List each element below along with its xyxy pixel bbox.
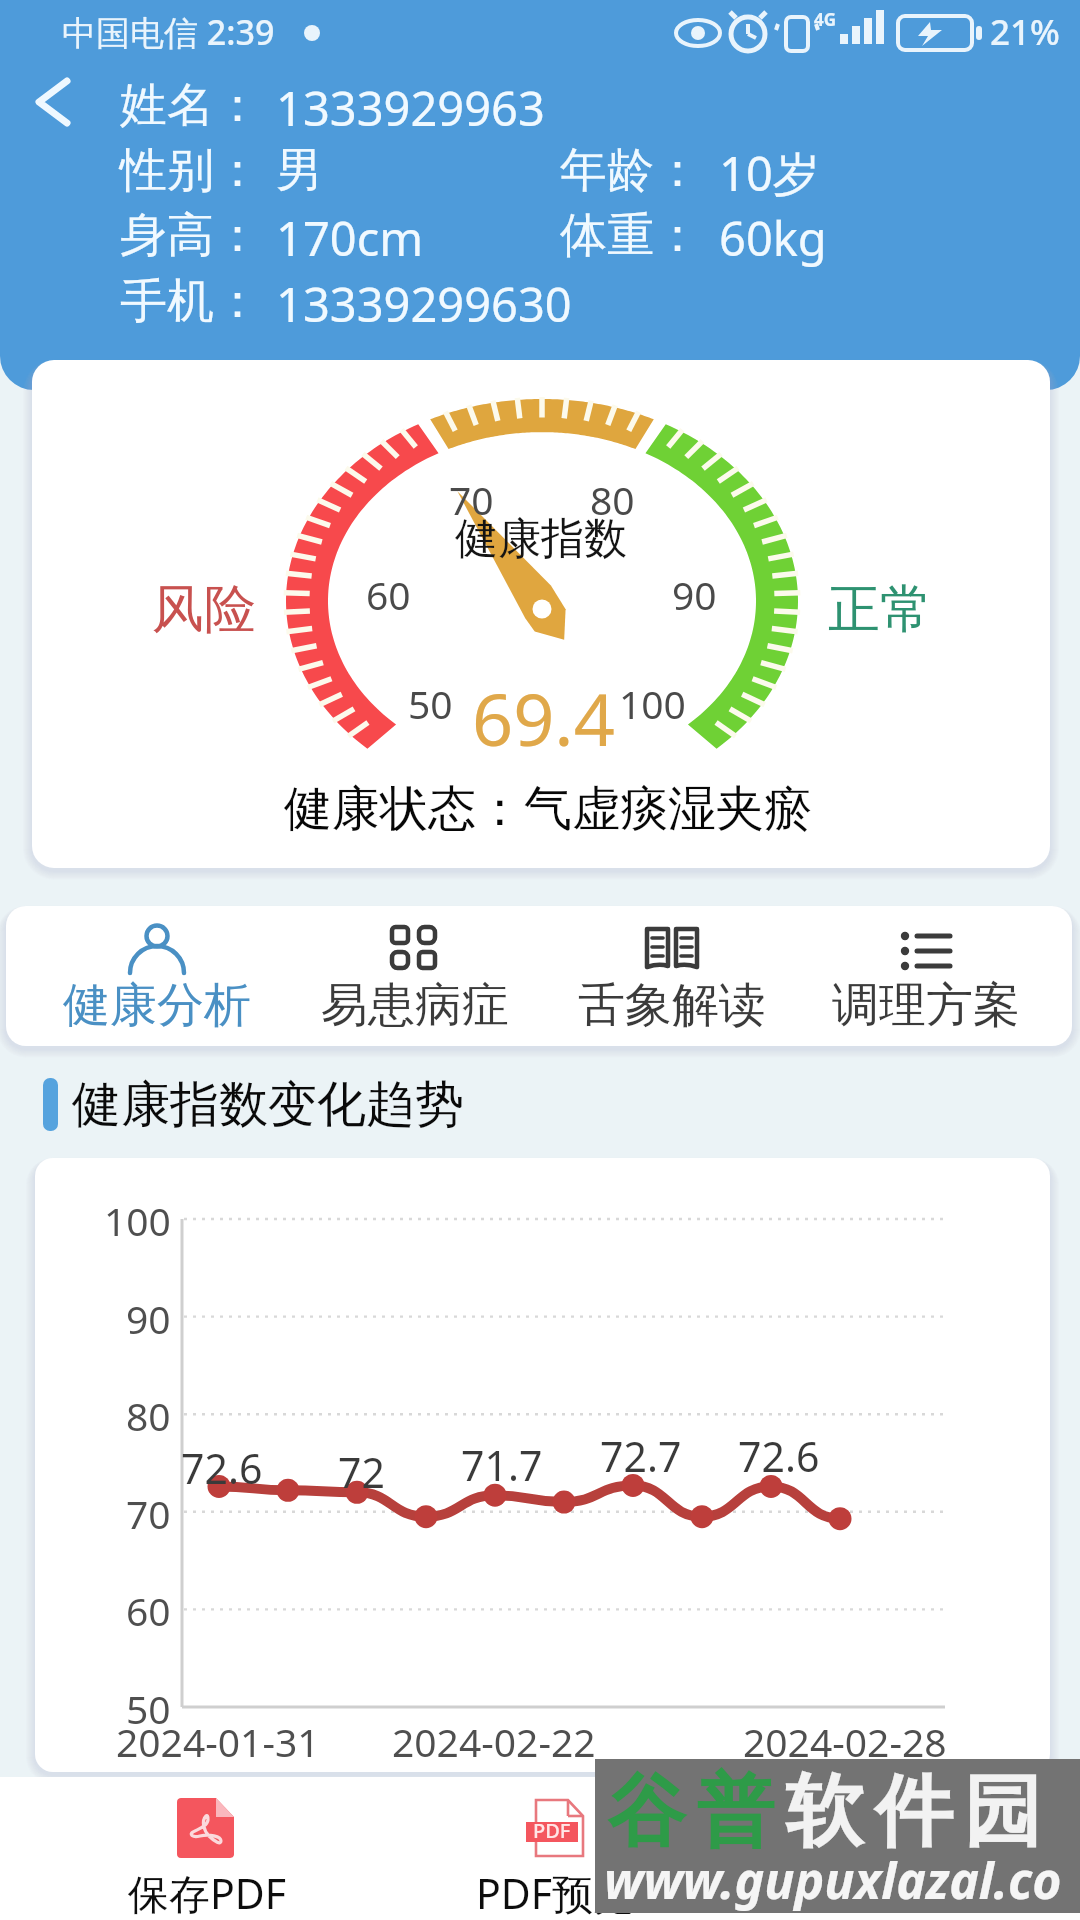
staticText: 100	[619, 677, 686, 730]
staticText: 体重：	[560, 206, 701, 265]
staticText: 2024-02-28	[743, 1715, 947, 1768]
staticText: PDF	[533, 1817, 571, 1844]
button[interactable]: 保存PDF	[37, 1777, 377, 1920]
staticText: 13339299630	[276, 272, 572, 336]
staticText: 风险	[152, 577, 256, 643]
staticText: 60	[126, 1584, 171, 1637]
staticText: 2024-01-31	[116, 1715, 320, 1768]
staticText: 健康指数变化趋势	[72, 1074, 464, 1134]
staticText: 60kg	[719, 206, 827, 270]
staticText: 性别：	[120, 141, 261, 200]
staticText: 170cm	[276, 206, 424, 270]
staticText: 69.4	[472, 669, 615, 767]
staticText: PDF预览	[476, 1865, 635, 1920]
staticText: 身高：	[120, 206, 261, 265]
button[interactable]: 易患病症	[287, 906, 543, 1046]
staticText: 2024-02-22	[392, 1715, 596, 1768]
staticText: 72	[338, 1444, 385, 1500]
staticText: 手机：	[120, 272, 261, 331]
button[interactable]: Back	[12, 60, 92, 140]
staticText: 90	[672, 568, 717, 621]
staticText: 72.6	[181, 1440, 263, 1496]
staticText: 分享	[862, 1865, 944, 1917]
button[interactable]: 调理方案	[798, 906, 1054, 1046]
staticText: 72.7	[600, 1428, 682, 1484]
staticText: 90	[126, 1292, 171, 1345]
staticText: 谷普	[602, 1763, 780, 1861]
staticText: 健康指数	[455, 512, 627, 566]
staticText: 4G	[814, 8, 837, 31]
staticText: 1333929963	[276, 76, 545, 140]
staticText: 10岁	[719, 141, 820, 205]
staticText: 健康分析	[63, 976, 251, 1035]
staticText: 年龄：	[560, 141, 701, 200]
button[interactable]: 健康分析	[29, 906, 285, 1046]
staticText: 100	[104, 1194, 171, 1247]
staticText: 姓名：	[120, 76, 261, 135]
staticText: 中国电信 2:39	[62, 9, 275, 55]
staticText: 80	[126, 1389, 171, 1442]
staticText: 保存PDF	[128, 1865, 287, 1920]
staticText: 60	[366, 568, 411, 621]
staticText: 舌象解读	[578, 976, 766, 1035]
staticText: 80	[590, 473, 635, 526]
staticText: 70	[126, 1487, 171, 1540]
staticText: www.gupuxlazal.com	[604, 1846, 1080, 1920]
staticText: 健康状态：气虚痰湿夹瘀	[284, 779, 812, 839]
staticText: 72.6	[738, 1428, 820, 1484]
button[interactable]: 舌象解读	[544, 906, 800, 1046]
staticText: 正常	[828, 577, 932, 643]
staticText: 21%	[990, 8, 1060, 56]
staticText: 70	[449, 473, 494, 526]
staticText: 易患病症	[321, 976, 509, 1035]
button[interactable]: 分享	[733, 1777, 1073, 1920]
staticText: 50	[408, 677, 453, 730]
staticText: 男	[276, 141, 323, 200]
staticText: 软件园	[780, 1763, 1047, 1861]
staticText: 50	[126, 1682, 171, 1735]
staticText: 71.7	[461, 1437, 543, 1493]
button[interactable]: PDF	[385, 1777, 725, 1920]
staticText: 调理方案	[832, 976, 1020, 1035]
